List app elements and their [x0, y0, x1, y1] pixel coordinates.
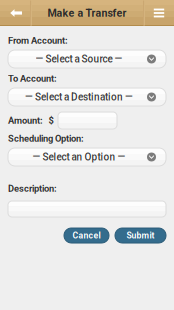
staticText: Amount: [8, 115, 43, 126]
staticText: From Account: [8, 35, 68, 46]
button[interactable]: Text field [8, 201, 166, 217]
staticText: To Account: [8, 73, 57, 84]
button[interactable]: Back [0, 0, 30, 25]
button[interactable]: — Select an Option — [8, 148, 166, 166]
button[interactable]: — Select a Source — [8, 50, 166, 68]
staticText: — Select a Source — [35, 53, 122, 65]
staticText: Make a Transfer [47, 7, 126, 19]
staticText: $ [48, 115, 53, 126]
staticText: Cancel [72, 230, 100, 241]
staticText: Submit [126, 230, 154, 241]
staticText: Description: [8, 183, 57, 194]
button[interactable]: Text field [58, 112, 117, 129]
button[interactable]: — Select a Destination — [8, 88, 166, 106]
button[interactable]: Submit [115, 228, 166, 243]
button[interactable]: Cancel [64, 228, 109, 243]
button[interactable]: Menu [144, 0, 174, 25]
staticText: — Select an Option — [32, 151, 125, 163]
staticText: Scheduling Option: [8, 133, 84, 144]
staticText: — Select a Destination — [25, 91, 133, 103]
